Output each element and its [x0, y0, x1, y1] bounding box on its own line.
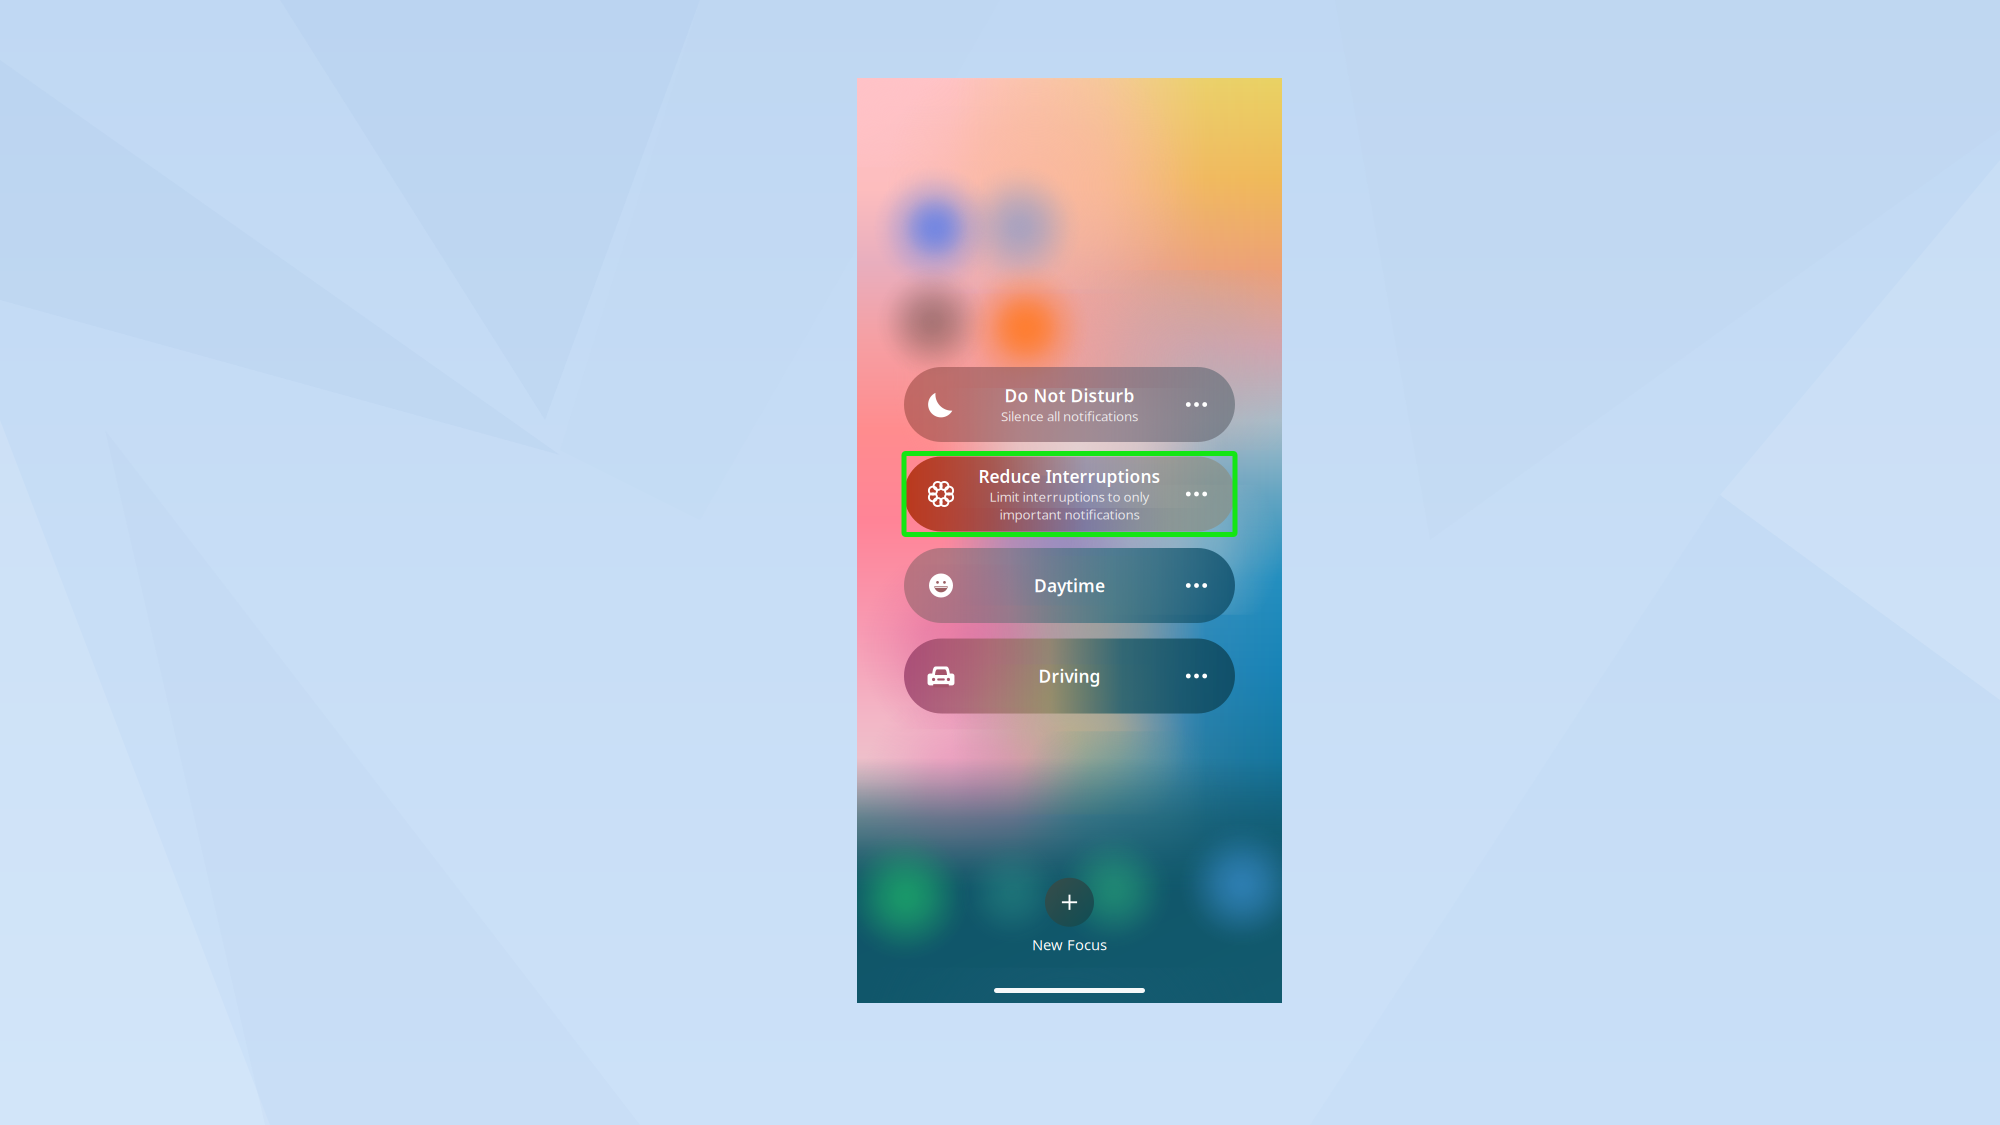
staticText: New Focus — [1032, 935, 1107, 954]
button[interactable]: Daytime — [904, 548, 1235, 623]
button[interactable]: Do Not Disturb — [904, 367, 1235, 442]
staticText: Daytime — [1034, 574, 1105, 597]
staticText: Driving — [1038, 664, 1100, 687]
staticText: Limit interruptions to only — [989, 488, 1149, 505]
button[interactable]: Driving — [904, 638, 1235, 713]
staticText: Do Not Disturb — [1004, 384, 1134, 407]
button[interactable]: Reduce Interruptions — [904, 456, 1235, 531]
staticText: important notifications — [999, 505, 1139, 523]
button[interactable]: New Focus — [1032, 878, 1107, 954]
staticText: Reduce Interruptions — [978, 465, 1160, 488]
staticText: Silence all notifications — [1001, 407, 1138, 425]
